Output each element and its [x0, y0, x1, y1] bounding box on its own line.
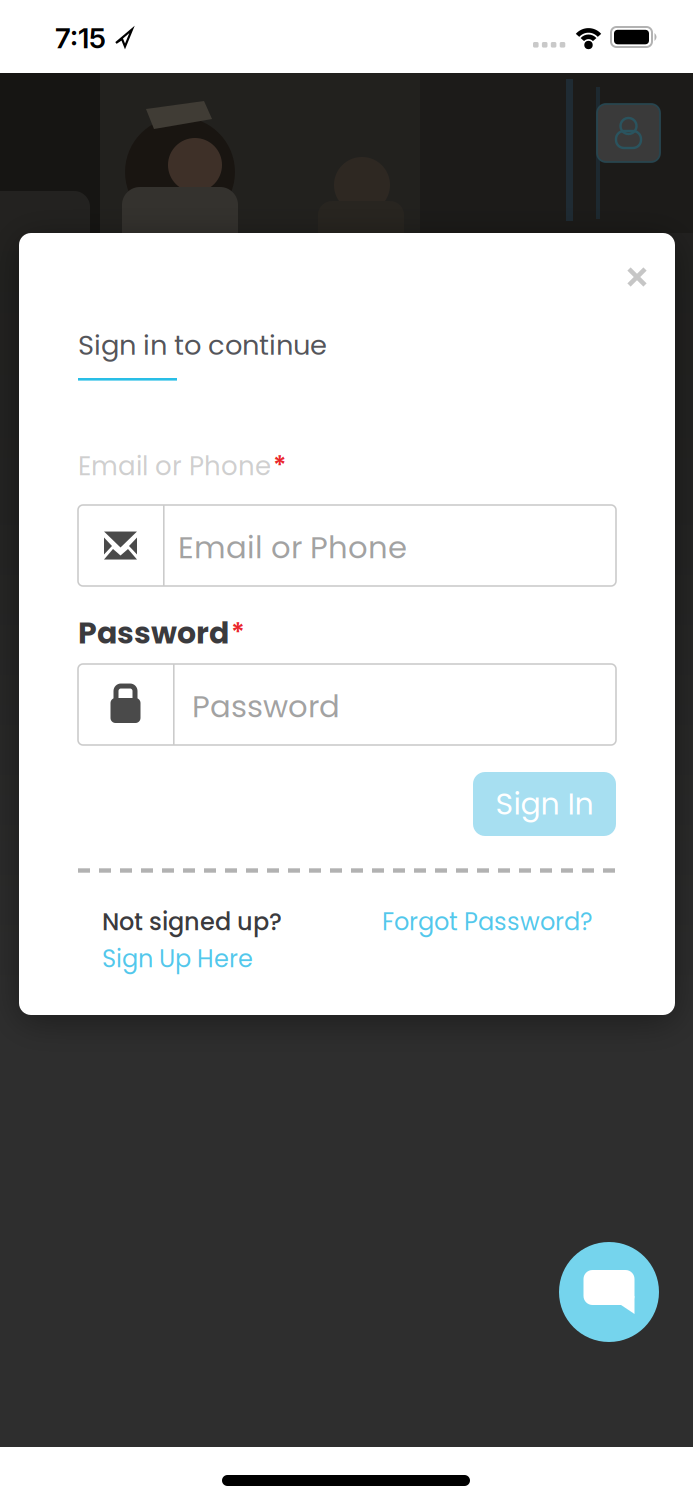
staticText: *	[231, 614, 245, 652]
staticText: 7:15	[55, 21, 106, 55]
button[interactable]: Close	[617, 257, 657, 297]
staticText: Sign In	[495, 783, 593, 825]
staticText: Email or Phone	[178, 526, 407, 569]
staticText: Password	[78, 612, 229, 654]
staticText: Password	[192, 685, 340, 728]
button[interactable]: Email or Phone	[78, 505, 616, 586]
button[interactable]: Not signed up?	[102, 905, 282, 939]
button[interactable]: Sign Up Here	[102, 942, 253, 976]
button[interactable]: Sign In	[473, 772, 616, 836]
button[interactable]: Profile	[597, 104, 660, 162]
button[interactable]: Password	[78, 664, 616, 745]
staticText: Forgot Password?	[382, 905, 593, 939]
staticText: Sign in to continue	[78, 326, 327, 364]
button[interactable]: Chat	[559, 1242, 659, 1342]
button[interactable]: Forgot Password?	[382, 905, 593, 939]
staticText: *	[273, 448, 286, 484]
staticText: Not signed up?	[102, 905, 282, 939]
staticText: Email or Phone	[78, 448, 271, 484]
staticText: Sign Up Here	[102, 942, 253, 976]
